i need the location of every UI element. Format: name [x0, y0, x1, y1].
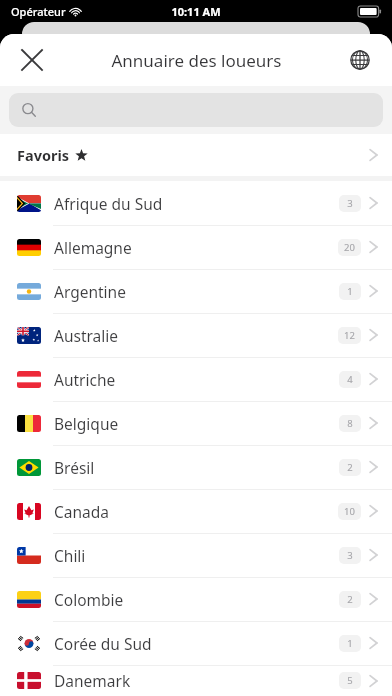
button[interactable]: Chili [0, 533, 392, 577]
staticText: Afrique du Sud [54, 193, 163, 214]
staticText: Colombie [54, 589, 124, 610]
button[interactable]: Corée du Sud [0, 621, 392, 665]
staticText: 5 [347, 674, 353, 687]
staticText: Belgique [54, 413, 119, 434]
staticText: 2 [347, 461, 353, 474]
staticText: 3 [347, 197, 353, 210]
staticText: Corée du Sud [54, 633, 152, 654]
staticText: 20 [344, 241, 355, 254]
button[interactable]: Australie [0, 313, 392, 357]
staticText: 12 [344, 329, 355, 342]
button[interactable] [9, 93, 383, 127]
button[interactable]: Argentine [0, 269, 392, 313]
staticText: Chili [54, 545, 86, 566]
button[interactable]: Colombie [0, 577, 392, 621]
staticText: 3 [347, 549, 353, 562]
staticText: Danemark [54, 670, 131, 691]
staticText: Brésil [54, 457, 95, 478]
button[interactable]: Language [338, 38, 382, 82]
staticText: Opérateur [11, 4, 66, 19]
staticText: 10:11 AM [171, 4, 221, 19]
staticText: Autriche [54, 369, 116, 390]
staticText: Favoris [17, 145, 70, 165]
staticText: 1 [347, 285, 353, 298]
staticText: Argentine [54, 281, 126, 302]
button[interactable]: Autriche [0, 357, 392, 401]
staticText: Canada [54, 501, 109, 522]
button[interactable]: Afrique du Sud [0, 181, 392, 225]
button[interactable]: Close [10, 38, 54, 82]
staticText: 10 [344, 505, 355, 518]
button[interactable]: Favoris [0, 134, 392, 176]
staticText: 8 [347, 417, 353, 430]
staticText: 1 [347, 637, 353, 650]
staticText: Australie [54, 325, 119, 346]
button[interactable]: Allemagne [0, 225, 392, 269]
button[interactable]: Belgique [0, 401, 392, 445]
button[interactable]: Danemark [0, 665, 392, 696]
staticText: 2 [347, 593, 353, 606]
staticText: Annuaire des loueurs [111, 49, 282, 72]
button[interactable]: Brésil [0, 445, 392, 489]
button[interactable]: Canada [0, 489, 392, 533]
staticText: Allemagne [54, 237, 132, 258]
staticText: 4 [347, 373, 353, 386]
